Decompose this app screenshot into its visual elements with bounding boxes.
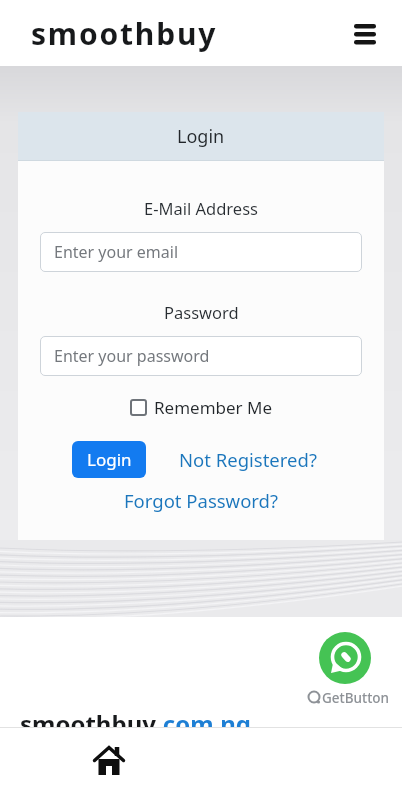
- button[interactable]: GetButton: [306, 689, 390, 707]
- button[interactable]: Remember Me: [130, 396, 273, 419]
- staticText: Enter your email: [54, 241, 179, 263]
- button[interactable]: Forgot Password?: [124, 488, 279, 513]
- button[interactable]: [319, 632, 371, 684]
- button[interactable]: Not Registered?: [179, 447, 317, 472]
- staticText: Login: [87, 448, 132, 471]
- button[interactable]: Enter your email: [40, 232, 362, 272]
- staticText: Remember Me: [154, 396, 273, 419]
- button[interactable]: Enter your password: [40, 336, 362, 376]
- staticText: .com.ng: [156, 707, 252, 727]
- staticText: smoothbuy: [31, 13, 218, 54]
- button[interactable]: [354, 22, 376, 44]
- staticText: Forgot Password?: [124, 488, 279, 513]
- staticText: E-Mail Address: [144, 197, 258, 219]
- staticText: GetButton: [322, 689, 390, 707]
- button[interactable]: [91, 743, 127, 779]
- staticText: Enter your password: [54, 345, 210, 367]
- staticText: Not Registered?: [179, 447, 317, 472]
- staticText: smoothbuy: [20, 707, 156, 727]
- button[interactable]: Login: [72, 441, 146, 478]
- staticText: Password: [164, 301, 239, 323]
- staticText: Login: [177, 124, 225, 149]
